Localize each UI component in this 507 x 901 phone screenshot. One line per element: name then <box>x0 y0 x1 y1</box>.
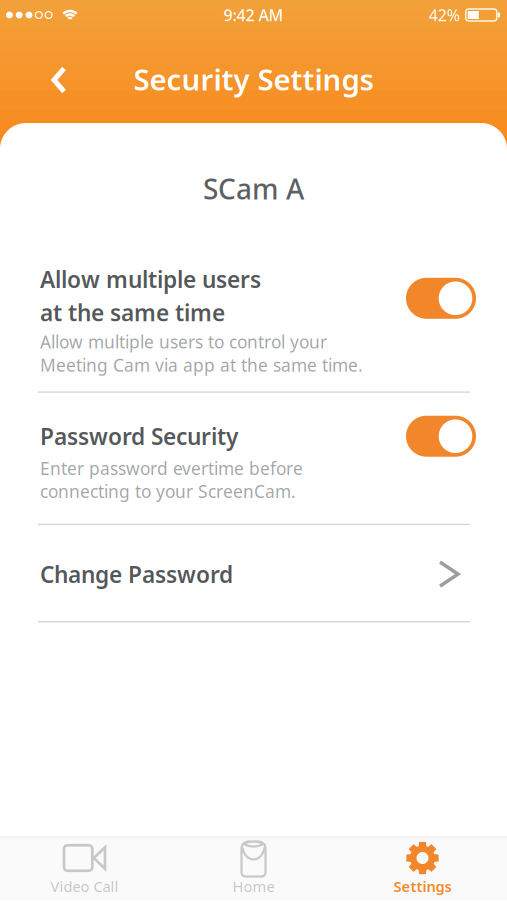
staticText: Home <box>232 876 274 896</box>
staticText: Change Password <box>40 559 233 589</box>
button[interactable]: Video Call <box>0 837 169 900</box>
button[interactable]: Toggle <box>406 416 476 457</box>
staticText: Allow multiple users <box>40 264 261 294</box>
button[interactable]: Settings <box>338 837 507 900</box>
staticText: connecting to your ScreenCam. <box>40 480 296 503</box>
staticText: Password Security <box>40 421 238 451</box>
staticText: Allow multiple users to control your <box>40 330 327 353</box>
staticText: at the same time <box>40 297 225 327</box>
button[interactable]: Back <box>0 51 84 101</box>
staticText: Enter password evertime before <box>40 457 303 480</box>
button[interactable]: Home <box>169 837 338 900</box>
button[interactable]: Toggle <box>406 278 476 319</box>
staticText: SCam A <box>203 170 304 207</box>
staticText: Video Call <box>50 876 118 896</box>
staticText: Security Settings <box>133 59 373 98</box>
staticText: 9:42 AM <box>223 4 283 26</box>
staticText: 42% <box>429 4 460 26</box>
staticText: Meeting Cam via app at the same time. <box>40 353 363 376</box>
button[interactable]: Change Password <box>0 525 507 589</box>
staticText: Settings <box>393 876 451 896</box>
